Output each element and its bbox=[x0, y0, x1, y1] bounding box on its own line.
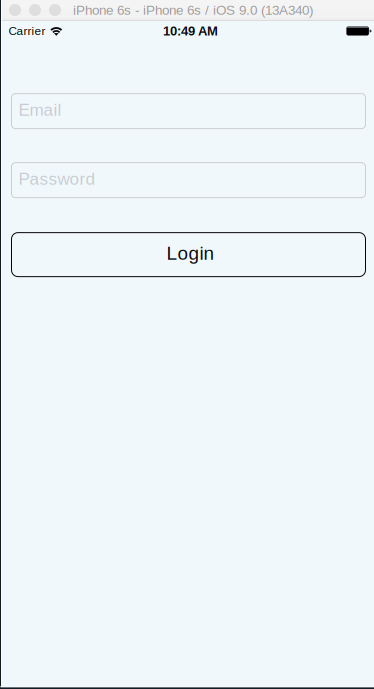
staticText: Password bbox=[18, 169, 95, 188]
button[interactable]: Login bbox=[11, 233, 365, 277]
staticText: Email bbox=[18, 100, 61, 119]
button[interactable]: Close bbox=[9, 4, 21, 16]
staticText: 10:49 AM bbox=[163, 24, 218, 38]
staticText: iPhone 6s - iPhone 6s / iOS 9.0 (13A340) bbox=[73, 2, 313, 17]
button[interactable]: Email bbox=[11, 94, 365, 129]
staticText: Login bbox=[166, 242, 214, 264]
staticText: Carrier bbox=[8, 24, 45, 37]
button[interactable]: Minimize bbox=[29, 4, 41, 16]
button[interactable]: Zoom bbox=[49, 4, 61, 16]
button[interactable]: Password bbox=[11, 163, 365, 198]
